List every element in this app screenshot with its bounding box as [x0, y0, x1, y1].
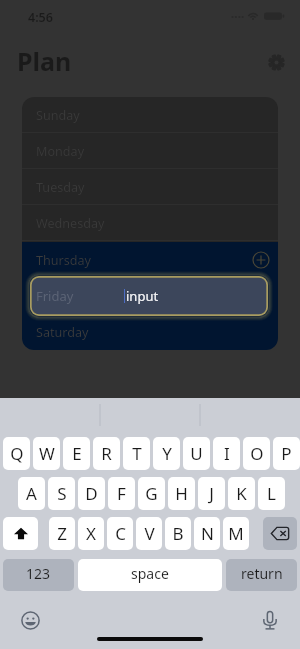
button[interactable]: G	[138, 477, 165, 510]
staticText: space	[131, 564, 169, 583]
staticText: T	[132, 442, 142, 465]
button[interactable]: B	[165, 517, 191, 550]
staticText: Plan	[17, 44, 72, 78]
staticText: Monday	[36, 143, 85, 160]
staticText: 4:56	[28, 9, 53, 26]
staticText: B	[172, 522, 184, 545]
staticText: U	[190, 442, 203, 465]
staticText: I	[224, 442, 230, 465]
button[interactable]: E	[63, 437, 90, 470]
button[interactable]: Dictation	[254, 604, 286, 636]
staticText: D	[85, 482, 98, 505]
staticText: L	[267, 482, 276, 505]
button[interactable]: Saturday	[22, 314, 278, 350]
staticText: M	[228, 522, 244, 545]
button[interactable]: M	[223, 517, 249, 550]
button[interactable]: L	[258, 477, 285, 510]
button[interactable]: P	[273, 437, 300, 470]
button[interactable]: F	[108, 477, 135, 510]
button[interactable]: X	[78, 517, 104, 550]
button[interactable]: T	[123, 437, 150, 470]
button[interactable]: Friday	[22, 278, 278, 314]
button[interactable]: U	[183, 437, 210, 470]
staticText: G	[145, 482, 158, 505]
staticText: Thursday	[36, 252, 92, 269]
button[interactable]: O	[243, 437, 270, 470]
button[interactable]: R	[93, 437, 120, 470]
button[interactable]: Settings	[263, 49, 289, 75]
staticText: P	[281, 442, 292, 465]
staticText: 123	[26, 564, 51, 583]
staticText: S	[57, 482, 67, 505]
staticText: Y	[162, 442, 172, 465]
staticText: R	[101, 442, 112, 465]
button[interactable]: V	[136, 517, 162, 550]
staticText: J	[209, 482, 214, 505]
button[interactable]: W	[33, 437, 60, 470]
button[interactable]: C	[107, 517, 133, 550]
button[interactable]: Shift	[3, 517, 38, 550]
button[interactable]: Friday	[30, 276, 268, 316]
staticText: N	[201, 522, 214, 545]
staticText: Saturday	[36, 324, 89, 341]
staticText: X	[86, 522, 96, 545]
staticText: V	[144, 522, 155, 545]
button[interactable]: S	[48, 477, 75, 510]
button[interactable]: 123	[3, 559, 74, 591]
staticText: Z	[57, 522, 67, 545]
staticText: return	[241, 564, 283, 583]
button[interactable]: D	[78, 477, 105, 510]
button[interactable]: A	[18, 477, 45, 510]
button[interactable]: Emoji	[14, 604, 46, 636]
staticText: W	[39, 442, 55, 465]
staticText: Friday	[36, 288, 73, 305]
button[interactable]: J	[198, 477, 225, 510]
staticText: Tuesday	[36, 179, 85, 196]
staticText: input	[126, 287, 159, 305]
staticText: Q	[10, 442, 24, 465]
button[interactable]: H	[168, 477, 195, 510]
button[interactable]: N	[194, 517, 220, 550]
staticText: A	[26, 482, 37, 505]
button[interactable]: K	[228, 477, 255, 510]
button[interactable]: Thursday	[22, 242, 278, 278]
staticText: F	[117, 482, 126, 505]
staticText: Friday	[36, 287, 74, 305]
button[interactable]: Q	[3, 437, 30, 470]
staticText: K	[236, 482, 247, 505]
staticText: E	[72, 442, 82, 465]
button[interactable]: space	[78, 559, 222, 591]
staticText: Sunday	[36, 107, 80, 124]
button[interactable]: Backspace	[263, 517, 297, 550]
button[interactable]: Y	[153, 437, 180, 470]
button[interactable]: Z	[49, 517, 75, 550]
button[interactable]: return	[226, 559, 297, 591]
staticText: H	[175, 482, 188, 505]
staticText: C	[115, 522, 126, 545]
button[interactable]: I	[213, 437, 240, 470]
staticText: Wednesday	[36, 215, 105, 232]
staticText: O	[250, 442, 264, 465]
